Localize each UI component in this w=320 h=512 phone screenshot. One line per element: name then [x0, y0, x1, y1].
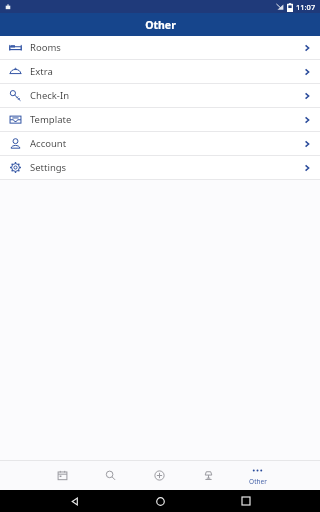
staticText: Other [249, 477, 267, 486]
staticText: Rooms [30, 41, 61, 54]
button[interactable]: Other [233, 460, 282, 490]
button[interactable]: Recent apps [235, 490, 257, 512]
staticText: Extra [30, 65, 53, 78]
button[interactable]: Back [64, 490, 86, 512]
button[interactable]: Rooms [0, 36, 320, 59]
button[interactable]: Settings [0, 156, 320, 179]
button[interactable]: Housekeeping [184, 460, 233, 490]
staticText: Template [30, 113, 72, 126]
staticText: Settings [30, 161, 67, 174]
button[interactable]: Calendar [38, 460, 86, 490]
button[interactable]: Account [0, 132, 320, 155]
button[interactable]: Search [86, 460, 135, 490]
staticText: Check-In [30, 89, 70, 102]
button[interactable]: Extra [0, 60, 320, 83]
button[interactable]: Template [0, 108, 320, 131]
staticText: 11:07 [296, 2, 316, 12]
staticText: Account [30, 137, 67, 150]
button[interactable]: Check-In [0, 84, 320, 107]
button[interactable]: Add [135, 460, 184, 490]
staticText: Other [145, 18, 176, 32]
button[interactable]: Home [149, 490, 171, 512]
